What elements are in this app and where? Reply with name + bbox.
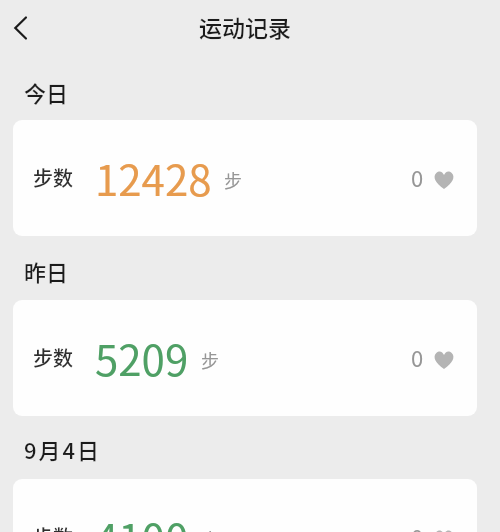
staticText: 昨日: [24, 255, 69, 287]
staticText: 12428: [95, 147, 212, 208]
button[interactable]: Like: [432, 528, 456, 532]
staticText: 0: [411, 520, 424, 532]
button[interactable]: Back: [0, 8, 40, 48]
staticText: 9月4日: [24, 433, 102, 465]
button[interactable]: Like: [432, 349, 456, 371]
staticText: 步数: [33, 522, 73, 532]
button[interactable]: Like: [432, 169, 456, 191]
staticText: 0: [411, 161, 424, 193]
staticText: 5209: [95, 327, 189, 388]
staticText: 步数: [33, 163, 73, 192]
button[interactable]: 步数: [13, 300, 477, 416]
staticText: 今日: [24, 76, 69, 108]
staticText: 步: [201, 347, 219, 373]
staticText: 运动记录: [199, 10, 291, 43]
button[interactable]: 步数: [13, 120, 477, 236]
staticText: 0: [411, 341, 424, 373]
staticText: 步: [224, 167, 242, 193]
button[interactable]: 步数: [13, 479, 477, 532]
staticText: 4100: [95, 506, 189, 532]
staticText: 步: [201, 526, 219, 532]
staticText: 步数: [33, 343, 73, 372]
